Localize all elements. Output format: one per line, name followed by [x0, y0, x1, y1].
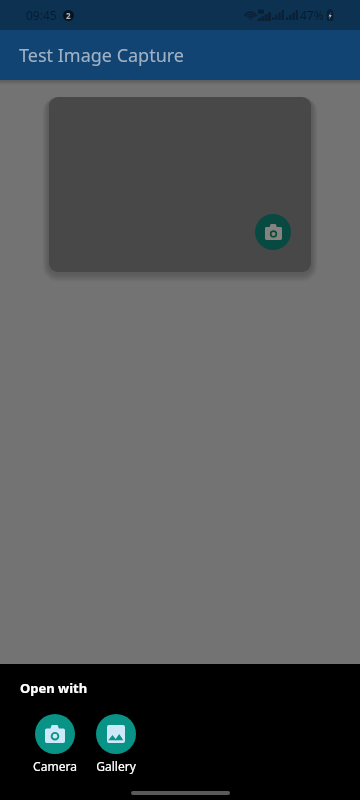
button[interactable]: Take photo [255, 214, 291, 250]
staticText: Gallery [96, 758, 136, 774]
staticText: Test Image Capture [19, 43, 185, 68]
staticText: Open with [20, 679, 88, 697]
button[interactable]: Open camera [24, 714, 85, 774]
other: Open gallery [96, 714, 136, 754]
staticText: 47% [300, 7, 324, 23]
staticText: 2 [66, 10, 71, 21]
staticText: Camera [33, 758, 77, 774]
other: Open camera [35, 714, 75, 754]
button[interactable]: Take photo [49, 97, 311, 272]
staticText: 09:45 [26, 7, 57, 23]
button[interactable]: Open gallery [85, 714, 146, 774]
